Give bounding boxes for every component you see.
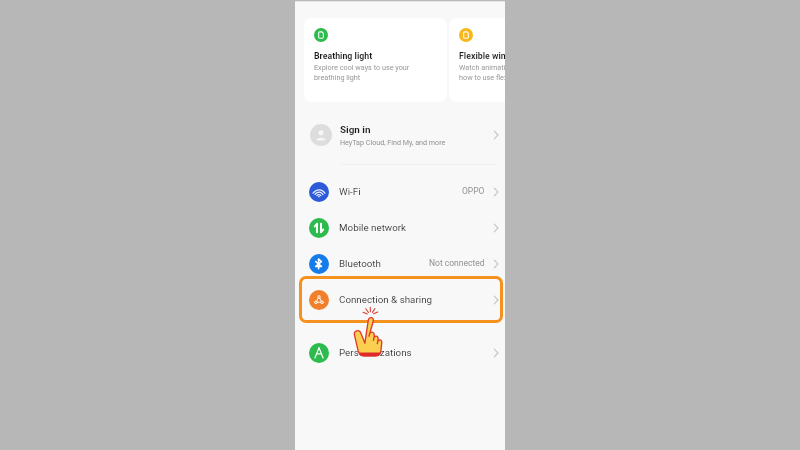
button[interactable]: Flexible window [449,18,505,102]
button[interactable]: Bluetooth [295,246,505,282]
staticText: Breathing light [314,51,373,61]
button[interactable]: Breathing light [304,18,447,102]
button[interactable]: Sign in [295,108,505,162]
staticText: OPPO [462,186,485,196]
staticText: HeyTap Cloud, Find My, and more [340,138,446,146]
staticText: Watch animations on how to use flexible … [459,63,505,81]
staticText: Mobile network [339,222,407,233]
button[interactable]: Mobile network [295,210,505,246]
button[interactable]: Wi-Fi [295,174,505,210]
button[interactable]: Connection & sharing [295,282,505,318]
staticText: Explore cool ways to use your breathing … [314,63,410,81]
staticText: Wi-Fi [339,186,361,197]
staticText: Personalizations [339,347,412,358]
staticText: Not connected [429,258,485,268]
staticText: Connection & sharing [339,294,433,305]
button[interactable]: Personalizations [295,335,505,371]
staticText: Bluetooth [339,258,381,269]
staticText: Sign in [340,124,371,136]
staticText: Flexible window [459,51,505,61]
